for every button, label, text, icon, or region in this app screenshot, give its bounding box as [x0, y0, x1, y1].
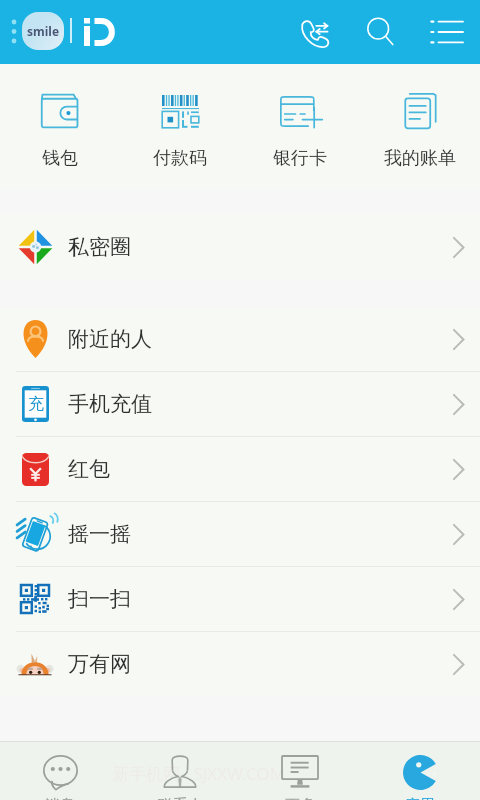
staticText: 更多 — [285, 796, 315, 800]
staticText: 手机充值 — [68, 391, 152, 417]
staticText: 钱包 — [42, 147, 78, 170]
staticText: 银行卡 — [273, 147, 327, 170]
button[interactable]: 消息 — [0, 742, 120, 800]
button[interactable]: 我的账单 — [360, 85, 480, 170]
button[interactable]: Search — [357, 10, 405, 54]
staticText: 扫一扫 — [68, 586, 131, 612]
button[interactable]: 摇一摇 — [0, 502, 480, 566]
button[interactable]: 私密圈 — [0, 215, 480, 279]
button[interactable]: 扫一扫 — [0, 567, 480, 631]
button[interactable]: 钱包 — [0, 85, 120, 170]
staticText: 摇一摇 — [68, 521, 131, 547]
staticText: 新手机网 · SJXXW.COM — [112, 762, 286, 785]
staticText: 红包 — [68, 456, 110, 482]
button[interactable]: 更多 — [240, 742, 360, 800]
staticText: 充 — [28, 394, 44, 414]
staticText: 附近的人 — [68, 326, 152, 352]
button[interactable]: 联系人 — [120, 742, 240, 800]
button[interactable]: 银行卡 — [240, 85, 360, 170]
staticText: 万有网 — [68, 651, 131, 677]
button[interactable]: 充 — [0, 372, 480, 436]
button[interactable]: 万有网 — [0, 632, 480, 696]
button[interactable]: 付款码 — [120, 85, 240, 170]
staticText: 应用 — [405, 796, 435, 800]
button[interactable]: Call transfer — [290, 10, 338, 54]
staticText: 私密圈 — [68, 234, 131, 260]
button[interactable]: Menu — [423, 10, 471, 54]
button[interactable]: 红包 — [0, 437, 480, 501]
button[interactable]: 附近的人 — [0, 307, 480, 371]
staticText: smile — [27, 23, 60, 39]
staticText: 付款码 — [153, 147, 207, 170]
staticText: 消息 — [45, 796, 75, 800]
staticText: 我的账单 — [384, 147, 456, 170]
staticText: 联系人 — [158, 796, 203, 800]
button[interactable]: 应用 — [360, 742, 480, 800]
